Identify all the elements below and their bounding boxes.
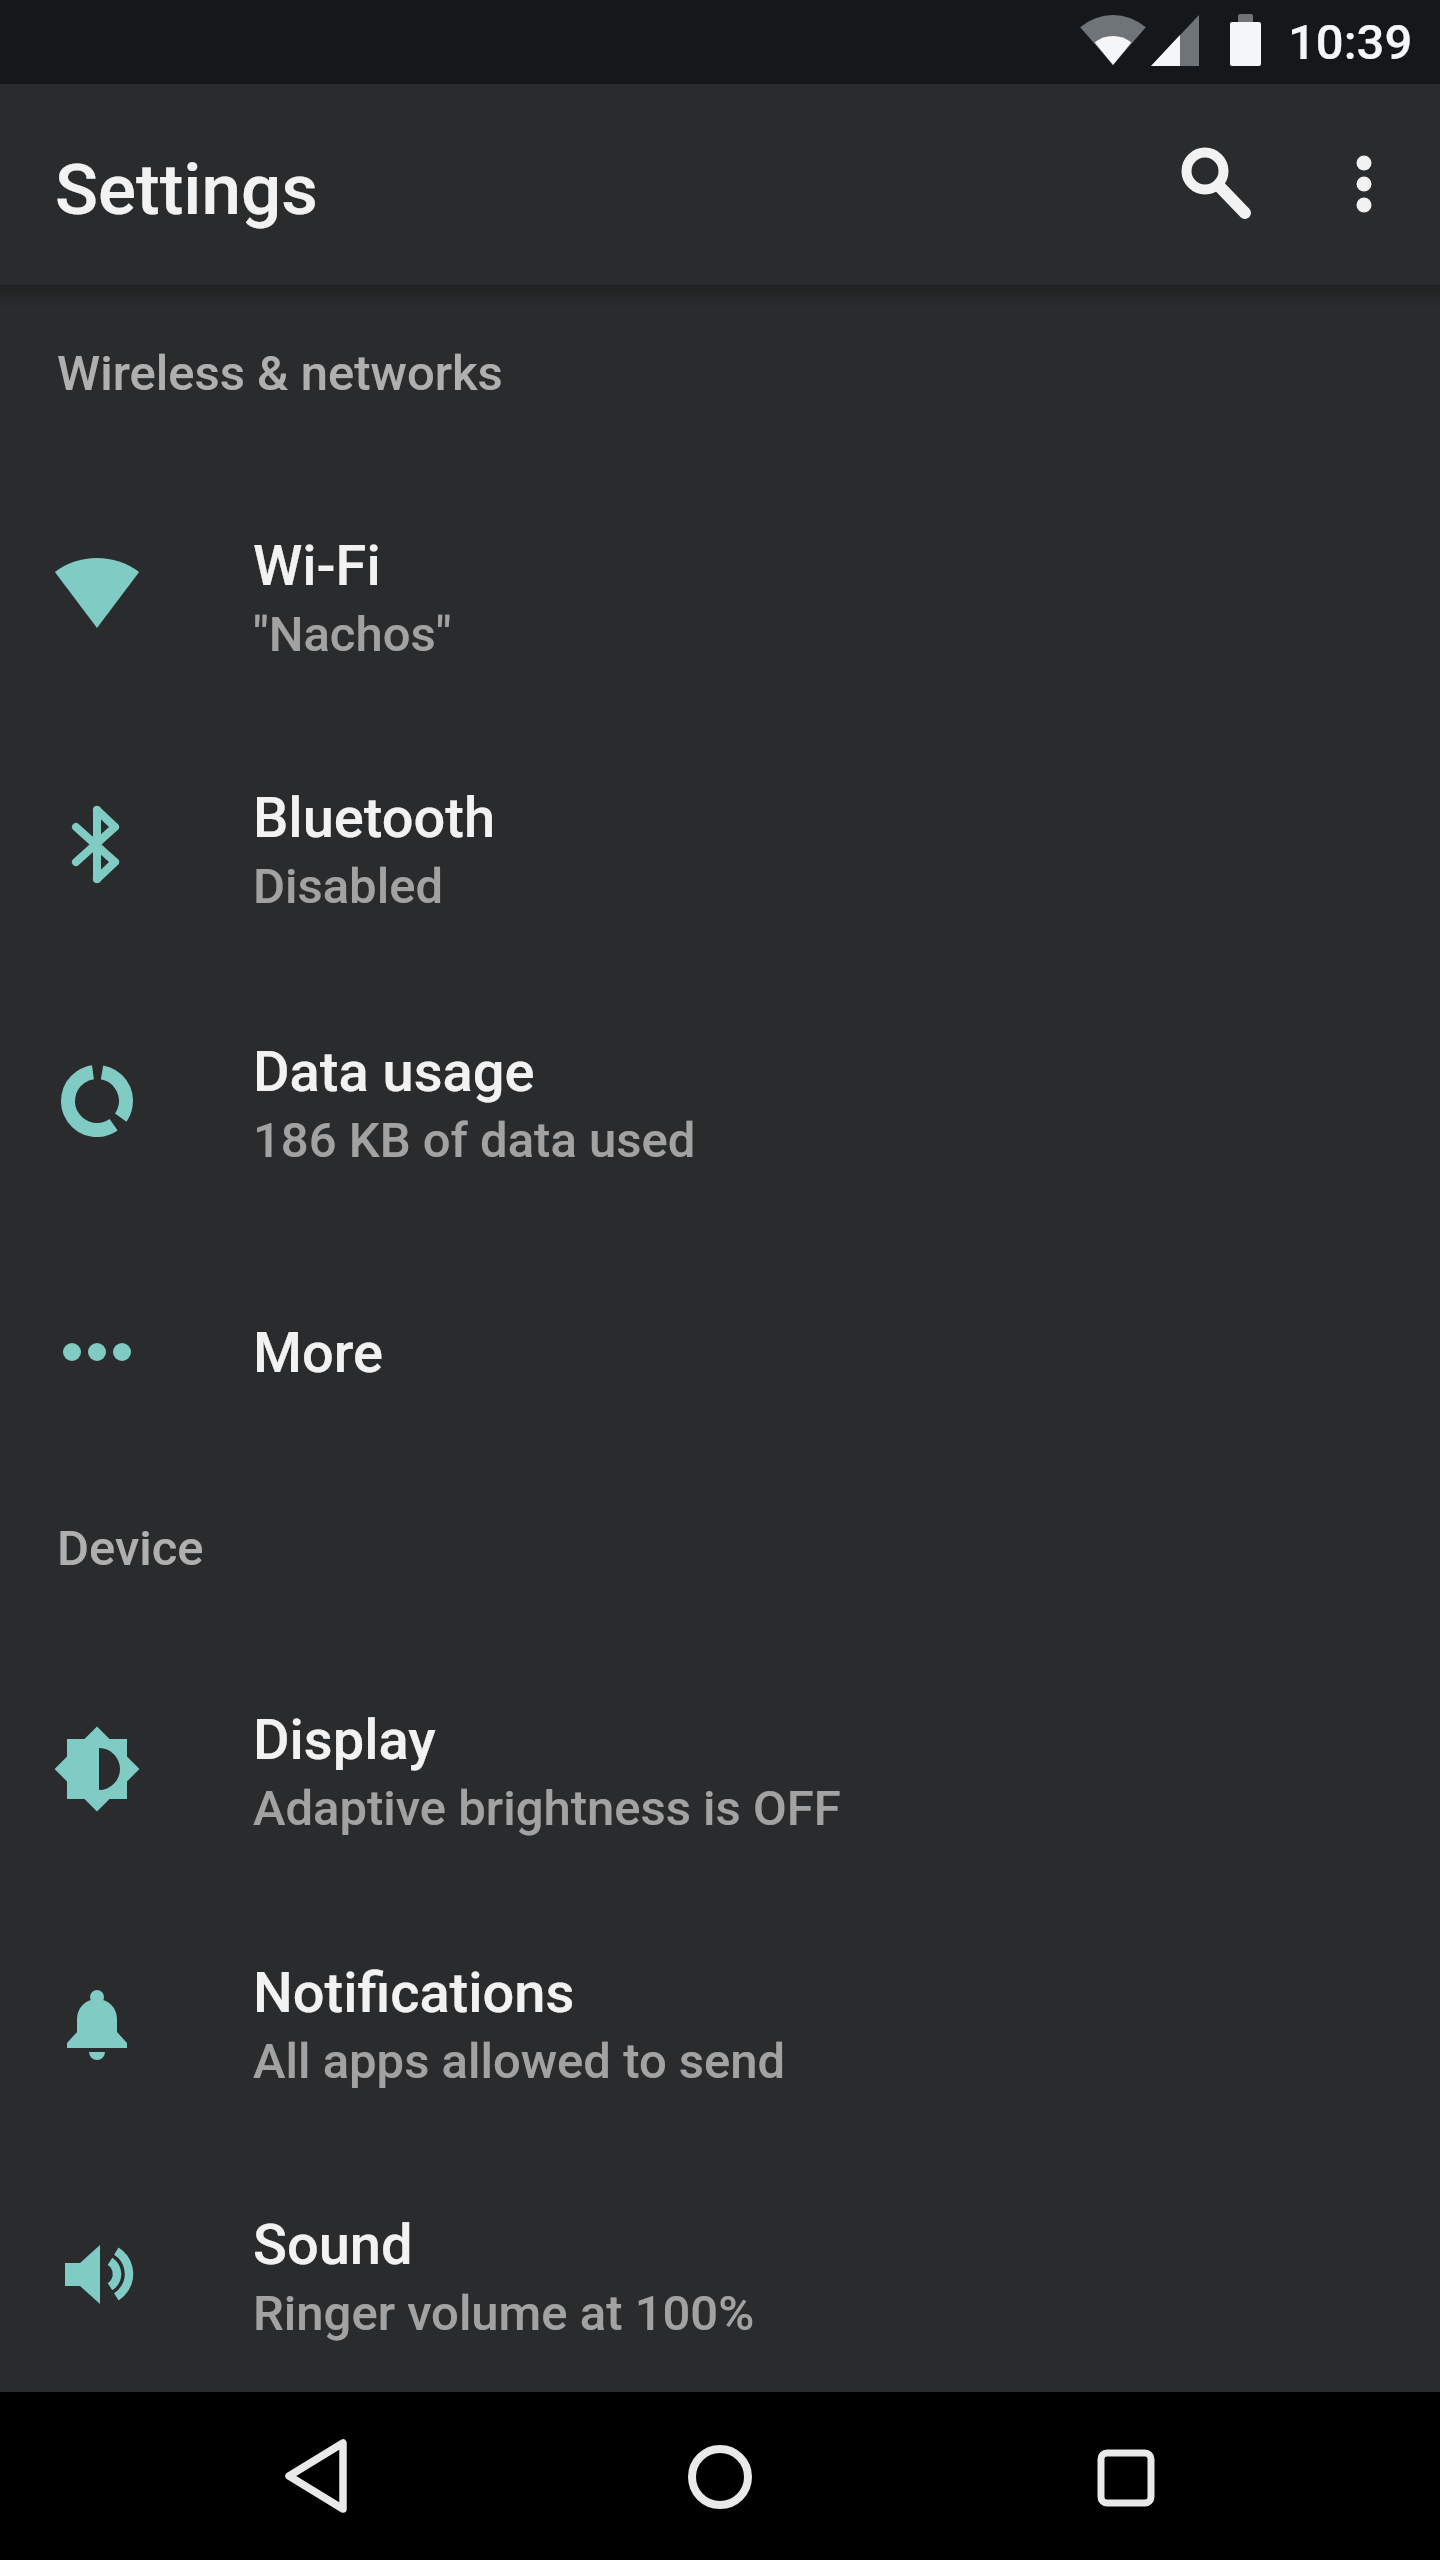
staticText: Sound xyxy=(253,2212,413,2278)
button[interactable] xyxy=(1316,136,1412,232)
staticText: Disabled xyxy=(253,858,443,915)
staticText: More xyxy=(253,1320,384,1386)
staticText: Display xyxy=(253,1707,436,1773)
button[interactable] xyxy=(236,2396,396,2556)
staticText: Wireless & networks xyxy=(57,345,503,402)
staticText: 186 KB of data used xyxy=(253,1112,696,1169)
button[interactable]: Data usage xyxy=(0,975,1440,1227)
staticText: 10:39 xyxy=(1288,14,1413,71)
staticText: Wi-Fi xyxy=(253,533,381,599)
button[interactable]: Display xyxy=(0,1643,1440,1895)
staticText: "Nachos" xyxy=(253,606,452,663)
staticText: Settings xyxy=(55,148,318,231)
staticText: All apps allowed to send xyxy=(253,2033,786,2090)
staticText: Data usage xyxy=(253,1039,535,1105)
staticText: Notifications xyxy=(253,1960,575,2026)
button[interactable] xyxy=(640,2396,800,2556)
staticText: Bluetooth xyxy=(253,785,496,851)
button[interactable]: Bluetooth xyxy=(0,721,1440,973)
staticText: Device xyxy=(57,1520,204,1577)
button[interactable]: Sound xyxy=(0,2148,1440,2400)
staticText: Adaptive brightness is OFF xyxy=(253,1780,841,1837)
button[interactable]: More xyxy=(0,1226,1440,1478)
button[interactable]: Wi-Fi xyxy=(0,469,1440,721)
button[interactable] xyxy=(1046,2396,1206,2556)
button[interactable]: Notifications xyxy=(0,1896,1440,2148)
staticText: Ringer volume at 100% xyxy=(253,2285,755,2342)
button[interactable] xyxy=(1158,136,1254,232)
